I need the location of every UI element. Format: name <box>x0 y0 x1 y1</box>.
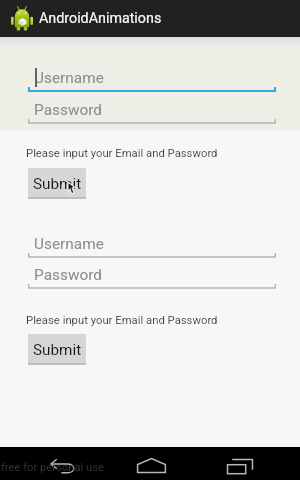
button[interactable]: Username <box>0 65 300 93</box>
staticText: free for personal use <box>1 461 104 474</box>
staticText: Password <box>34 101 102 119</box>
staticText: Submit <box>33 341 82 359</box>
button[interactable]: Home <box>137 458 167 479</box>
button[interactable]: Password <box>0 97 300 125</box>
button[interactable]: Back <box>50 459 76 480</box>
staticText: Submit <box>33 175 82 193</box>
staticText: AndroidAnimations <box>39 10 162 27</box>
button[interactable]: Username <box>0 231 300 259</box>
button[interactable]: AndroidAnimations <box>0 0 300 37</box>
staticText: Username <box>34 69 104 87</box>
button[interactable]: Submit <box>28 168 86 199</box>
button[interactable]: Submit <box>28 334 86 365</box>
button[interactable]: Password <box>0 262 300 290</box>
staticText: Please input your Email and Password <box>26 314 218 327</box>
staticText: Password <box>34 266 102 284</box>
staticText: Username <box>34 235 104 253</box>
button[interactable]: Recent apps <box>227 459 254 480</box>
staticText: Please input your Email and Password <box>26 147 218 160</box>
